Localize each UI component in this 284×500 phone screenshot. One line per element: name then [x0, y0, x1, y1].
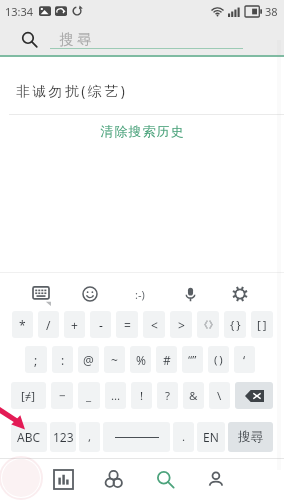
button[interactable]: … — [105, 382, 126, 409]
button[interactable]: / — [38, 311, 59, 338]
button[interactable]: ABC — [11, 422, 47, 452]
button[interactable]: . — [173, 422, 194, 452]
button[interactable]: ; — [25, 346, 47, 373]
button[interactable]: Settings — [215, 275, 265, 313]
staticText: … — [111, 388, 121, 404]
staticText: “” — [188, 352, 197, 368]
staticText: 《》 — [199, 319, 218, 331]
staticText: @ — [83, 352, 94, 368]
button[interactable]: ( ) — [208, 346, 229, 373]
staticText: 非诚勿扰(综艺) — [16, 82, 128, 100]
button[interactable]: > — [170, 311, 192, 338]
staticText: 搜尋 — [238, 429, 263, 445]
button[interactable]: Discover — [89, 458, 140, 500]
staticText: 13:34 — [5, 4, 34, 19]
button[interactable]: ‘ — [234, 346, 255, 373]
button[interactable]: # — [156, 346, 177, 373]
button[interactable]: 清除搜索历史 — [0, 115, 284, 147]
button[interactable]: + — [64, 311, 85, 338]
staticText: { } — [230, 317, 241, 333]
button[interactable]: , — [79, 422, 100, 452]
button[interactable]: Charts — [38, 458, 89, 500]
button[interactable]: ? — [157, 382, 178, 409]
button[interactable]: [≠] — [11, 382, 46, 409]
staticText: EN — [203, 429, 219, 445]
button[interactable]: = — [116, 311, 138, 338]
staticText: \ — [217, 388, 222, 404]
button[interactable]: Voice input — [165, 275, 215, 313]
staticText: . — [182, 429, 186, 445]
button[interactable]: : — [52, 346, 73, 373]
staticText: > — [178, 317, 185, 333]
button[interactable]: Search — [140, 458, 191, 500]
button[interactable]: 搜尋 — [228, 422, 273, 452]
staticText: & — [189, 388, 198, 404]
button[interactable]: * — [12, 311, 33, 338]
button[interactable]: Emoticons — [115, 275, 165, 313]
staticText: ~ — [111, 352, 118, 368]
staticText: ? — [165, 388, 170, 404]
button[interactable]: { } — [224, 311, 246, 338]
staticText: ; — [34, 352, 38, 368]
staticText: ABC — [17, 429, 41, 445]
button[interactable]: - — [90, 311, 111, 338]
button[interactable]: “” — [182, 346, 203, 373]
button[interactable]: − — [51, 382, 73, 409]
staticText: # — [163, 352, 171, 368]
staticText: / — [46, 317, 51, 333]
button[interactable]: \ — [209, 382, 230, 409]
staticText: < — [151, 317, 158, 333]
staticText: % — [136, 352, 146, 368]
button[interactable]: % — [130, 346, 151, 373]
button[interactable]: EN — [197, 422, 225, 452]
staticText: ! — [140, 388, 144, 404]
staticText: [ ] — [257, 317, 267, 333]
staticText: 搜尋 — [58, 31, 93, 49]
staticText: _ — [86, 388, 92, 404]
button[interactable]: Keyboard layout — [16, 275, 65, 313]
button[interactable]: Space — [103, 422, 170, 452]
button[interactable]: Backspace — [235, 382, 273, 409]
button[interactable]: 非诚勿扰(综艺) — [0, 57, 284, 114]
staticText: * — [19, 317, 26, 333]
button[interactable]: & — [183, 382, 204, 409]
button[interactable]: ! — [131, 382, 152, 409]
button[interactable]: ~ — [104, 346, 125, 373]
staticText: , — [88, 429, 92, 445]
staticText: :-) — [135, 287, 145, 302]
staticText: + — [71, 317, 78, 333]
button[interactable]: [ ] — [251, 311, 273, 338]
staticText: 38 — [265, 4, 278, 19]
staticText: ‘ — [243, 352, 246, 368]
staticText: [≠] — [21, 388, 36, 404]
button[interactable]: 123 — [50, 422, 76, 452]
staticText: − — [59, 388, 66, 404]
staticText: ( ) — [214, 352, 223, 368]
button[interactable]: < — [143, 311, 165, 338]
button[interactable]: 《》 — [197, 311, 219, 338]
staticText: - — [99, 317, 103, 333]
button[interactable]: _ — [78, 382, 100, 409]
staticText: 清除搜索历史 — [100, 123, 184, 139]
button[interactable]: Profile — [191, 458, 242, 500]
button[interactable]: @ — [78, 346, 99, 373]
staticText: = — [124, 317, 131, 333]
button[interactable]: Search — [20, 30, 39, 49]
staticText: 123 — [53, 429, 74, 445]
button[interactable]: Emoji — [65, 275, 115, 313]
staticText: : — [61, 352, 65, 368]
